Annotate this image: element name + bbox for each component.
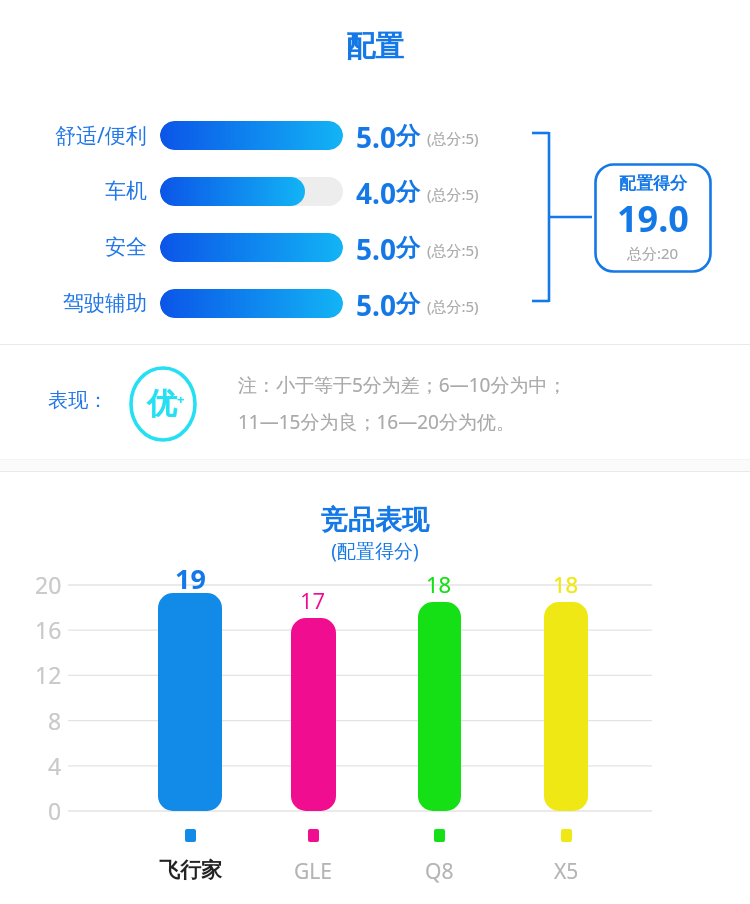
staticText: 12 <box>35 659 62 690</box>
staticText: 优 <box>147 385 177 423</box>
staticText: Q8 <box>425 857 454 886</box>
staticText: 18 <box>553 569 579 599</box>
staticText: 0 <box>48 795 62 826</box>
button[interactable]: 驾驶辅助 <box>0 286 750 320</box>
staticText: 安全 <box>105 234 147 260</box>
staticText: 4 <box>48 750 62 781</box>
button[interactable]: 安全 <box>0 230 750 264</box>
button[interactable]: Q8 <box>399 829 479 886</box>
staticText: 配置 <box>0 28 750 65</box>
staticText: 表现： <box>48 388 108 413</box>
button[interactable] <box>158 593 222 811</box>
button[interactable]: 配置得分 <box>594 163 712 273</box>
staticText: 19 <box>175 560 206 597</box>
staticText: 5.0 <box>356 118 396 152</box>
button[interactable]: GLE <box>273 829 353 886</box>
staticText: 配置得分 <box>619 173 687 194</box>
staticText: (总分:5) <box>427 240 479 260</box>
staticText: 驾驶辅助 <box>63 290 147 316</box>
staticText: 舒适/便利 <box>55 121 147 150</box>
staticText: GLE <box>294 857 332 886</box>
staticText: 分 <box>396 121 420 151</box>
staticText: 17 <box>300 585 326 615</box>
staticText: 5.0 <box>356 230 396 264</box>
staticText: 车机 <box>105 178 147 204</box>
staticText: 11—15分为良；16—20分为优。 <box>238 409 515 435</box>
staticText: (总分:5) <box>427 128 479 148</box>
staticText: 分 <box>396 233 420 263</box>
staticText: (配置得分) <box>0 538 750 564</box>
button[interactable] <box>291 618 336 811</box>
staticText: 16 <box>35 614 62 645</box>
button[interactable] <box>544 602 588 811</box>
button[interactable]: X5 <box>526 829 606 886</box>
staticText: X5 <box>554 857 579 886</box>
staticText: 竞品表现 <box>0 503 750 537</box>
button[interactable] <box>418 602 461 811</box>
staticText: (总分:5) <box>427 184 479 204</box>
staticText: 分 <box>396 289 420 319</box>
staticText: + <box>177 390 185 408</box>
staticText: 19.0 <box>617 194 689 243</box>
staticText: 分 <box>396 177 420 207</box>
button[interactable]: 飞行家 <box>150 829 230 883</box>
staticText: 5.0 <box>356 286 396 320</box>
staticText: (总分:5) <box>427 296 479 316</box>
button[interactable]: 车机 <box>0 174 750 208</box>
staticText: 20 <box>35 569 62 600</box>
staticText: 8 <box>48 705 62 736</box>
button[interactable]: 舒适/便利 <box>0 118 750 152</box>
staticText: 飞行家 <box>159 857 222 883</box>
staticText: 总分:20 <box>627 243 679 263</box>
staticText: 4.0 <box>356 174 396 208</box>
staticText: 18 <box>426 569 452 599</box>
other: 优 rating <box>123 364 203 444</box>
staticText: 注：小于等于5分为差；6—10分为中； <box>238 372 567 398</box>
